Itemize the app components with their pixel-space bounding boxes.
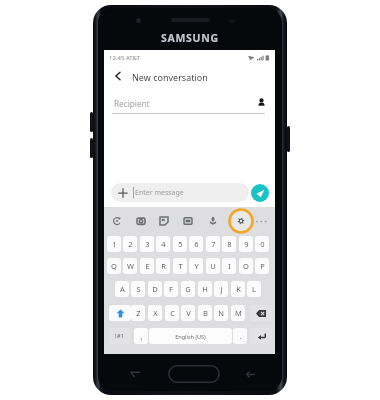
staticText: K xyxy=(236,284,241,294)
staticText: N xyxy=(218,308,224,318)
button[interactable]: O xyxy=(239,258,253,274)
staticText: 8 xyxy=(227,239,232,249)
staticText: Enter message xyxy=(135,188,184,198)
button[interactable]: W xyxy=(123,258,137,274)
button[interactable]: Backspace xyxy=(250,305,272,321)
staticText: T xyxy=(178,261,183,271)
staticText: O xyxy=(243,261,249,271)
button[interactable]: Keyboard settings xyxy=(232,212,250,230)
staticText: S xyxy=(136,284,141,294)
staticText: 0 xyxy=(260,239,265,249)
button[interactable]: Back xyxy=(243,367,257,381)
button[interactable]: Back xyxy=(110,68,126,84)
button[interactable]: Y xyxy=(189,258,203,274)
button[interactable]: E xyxy=(140,258,154,274)
staticText: C xyxy=(170,308,175,318)
staticText: L xyxy=(252,284,256,294)
button[interactable]: 3 xyxy=(140,236,154,252)
button[interactable]: Recent stickers xyxy=(108,212,126,230)
staticText: A xyxy=(120,284,125,294)
staticText: W xyxy=(127,261,134,271)
button[interactable]: 7 xyxy=(206,236,220,252)
staticText: . xyxy=(239,331,242,341)
button[interactable]: C xyxy=(165,305,179,321)
button[interactable]: !#1 xyxy=(109,328,130,344)
staticText: Recipient xyxy=(114,98,150,109)
staticText: English (US) xyxy=(175,333,206,340)
staticText: X xyxy=(153,308,158,318)
staticText: V xyxy=(186,308,191,318)
button[interactable]: Camera xyxy=(132,212,150,230)
staticText: Q xyxy=(111,261,117,271)
button[interactable]: Voice input xyxy=(204,212,222,230)
staticText: M xyxy=(235,308,242,318)
button[interactable]: S xyxy=(131,281,145,297)
button[interactable]: G xyxy=(181,281,195,297)
button[interactable]: Enter xyxy=(250,328,272,344)
button[interactable]: More options xyxy=(252,212,270,230)
button[interactable]: T xyxy=(173,258,187,274)
staticText: I xyxy=(228,261,231,271)
button[interactable]: 5 xyxy=(173,236,187,252)
button[interactable]: D xyxy=(148,281,162,297)
button[interactable]: 0 xyxy=(255,236,269,252)
staticText: 4 xyxy=(161,239,166,249)
button[interactable]: Shift xyxy=(109,305,131,321)
button[interactable]: L xyxy=(247,281,261,297)
button[interactable]: 1 xyxy=(107,236,121,252)
staticText: SAMSUNG xyxy=(161,31,219,43)
button[interactable]: A xyxy=(115,281,129,297)
staticText: D xyxy=(152,284,158,294)
staticText: 1 xyxy=(112,239,117,249)
staticText: 9 xyxy=(244,239,249,249)
staticText: F xyxy=(169,284,173,294)
button[interactable]: J xyxy=(214,281,228,297)
staticText: 3 xyxy=(145,239,150,249)
staticText: P xyxy=(260,261,265,271)
staticText: 12:45 AT&T xyxy=(109,54,140,62)
button[interactable]: 9 xyxy=(239,236,253,252)
button[interactable]: M xyxy=(231,305,245,321)
button[interactable]: Send xyxy=(251,184,269,202)
button[interactable]: I xyxy=(222,258,236,274)
button[interactable]: K xyxy=(231,281,245,297)
staticText: H xyxy=(202,284,208,294)
button[interactable]: R xyxy=(156,258,170,274)
button[interactable]: P xyxy=(255,258,269,274)
staticText: 2 xyxy=(128,239,133,249)
staticText: R xyxy=(161,261,166,271)
button[interactable]: Stickers xyxy=(155,212,173,230)
button[interactable]: 6 xyxy=(189,236,203,252)
staticText: Y xyxy=(194,261,199,271)
staticText: Z xyxy=(136,308,141,318)
button[interactable]: 2 xyxy=(123,236,137,252)
button[interactable]: Z xyxy=(131,305,145,321)
button[interactable]: Recent apps xyxy=(128,367,142,381)
staticText: !#1 xyxy=(115,332,124,340)
button[interactable]: English (US) xyxy=(149,328,232,344)
staticText: 7 xyxy=(211,239,216,249)
button[interactable]: Choose contact xyxy=(254,95,268,109)
button[interactable]: N xyxy=(214,305,228,321)
button[interactable]: 4 xyxy=(156,236,170,252)
staticText: New conversation xyxy=(132,71,208,83)
button[interactable]: , xyxy=(134,328,148,344)
button[interactable]: Enter message xyxy=(111,183,249,202)
button[interactable]: F xyxy=(164,281,178,297)
button[interactable]: . xyxy=(233,328,247,344)
button[interactable]: U xyxy=(206,258,220,274)
button[interactable]: Q xyxy=(107,258,121,274)
button[interactable]: V xyxy=(181,305,195,321)
button[interactable]: H xyxy=(198,281,212,297)
staticText: 5 xyxy=(178,239,183,249)
button[interactable]: B xyxy=(198,305,212,321)
button[interactable]: X xyxy=(148,305,162,321)
button[interactable]: 8 xyxy=(222,236,236,252)
staticText: B xyxy=(203,308,208,318)
button[interactable]: Gallery xyxy=(179,212,197,230)
button[interactable]: Home xyxy=(168,365,220,383)
staticText: E xyxy=(145,261,150,271)
staticText: J xyxy=(220,284,223,294)
staticText: G xyxy=(185,284,191,294)
staticText: U xyxy=(210,261,216,271)
